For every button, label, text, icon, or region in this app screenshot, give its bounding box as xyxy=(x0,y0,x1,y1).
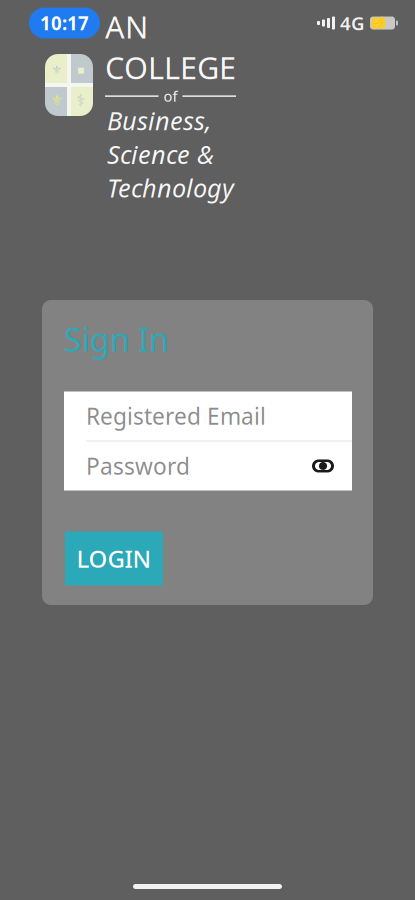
staticText: LOGIN xyxy=(76,543,151,574)
staticText: ⚜ xyxy=(51,63,62,76)
staticText: ▪ xyxy=(77,63,85,76)
staticText: 4G xyxy=(340,11,365,35)
staticText: ⚡ xyxy=(371,16,386,30)
staticText: 10:17 xyxy=(40,11,89,35)
staticText: CANADIAN COLLEGE xyxy=(105,0,236,88)
staticText: Sign In xyxy=(64,318,169,360)
staticText: ⚜ xyxy=(50,92,63,109)
staticText: Registered Email xyxy=(86,401,266,431)
button[interactable]: Show password xyxy=(306,449,340,483)
staticText: of xyxy=(163,86,177,106)
staticText: Password xyxy=(86,451,190,481)
staticText: Business, Science & Technology xyxy=(107,104,234,204)
button[interactable]: LOGIN xyxy=(65,531,163,585)
staticText: ⚕ xyxy=(76,91,85,110)
